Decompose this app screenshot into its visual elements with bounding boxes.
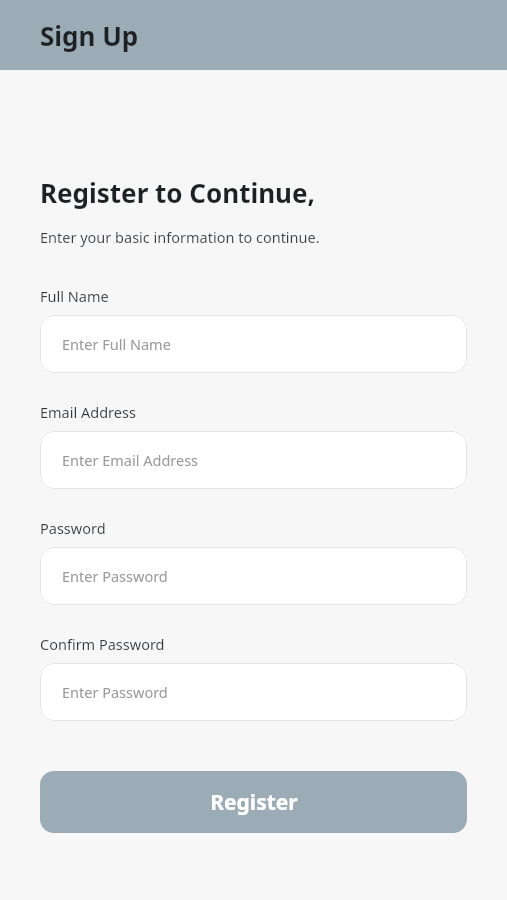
staticText: Enter Password (62, 566, 168, 586)
staticText: Register (210, 788, 298, 817)
staticText: Full Name (40, 286, 109, 306)
staticText: Register to Continue, (40, 175, 315, 210)
staticText: Sign Up (40, 18, 139, 53)
button[interactable]: Full Name (40, 315, 467, 373)
button[interactable]: Email Address (40, 431, 467, 489)
button[interactable]: Register (40, 771, 467, 833)
staticText: Password (40, 518, 106, 538)
staticText: Enter Full Name (62, 334, 171, 354)
staticText: Enter your basic information to continue… (40, 227, 320, 247)
button[interactable]: Password (40, 547, 467, 605)
staticText: Confirm Password (40, 634, 165, 654)
button[interactable]: Confirm Password (40, 663, 467, 721)
staticText: Email Address (40, 402, 136, 422)
staticText: Enter Password (62, 682, 168, 702)
staticText: Enter Email Address (62, 450, 199, 470)
